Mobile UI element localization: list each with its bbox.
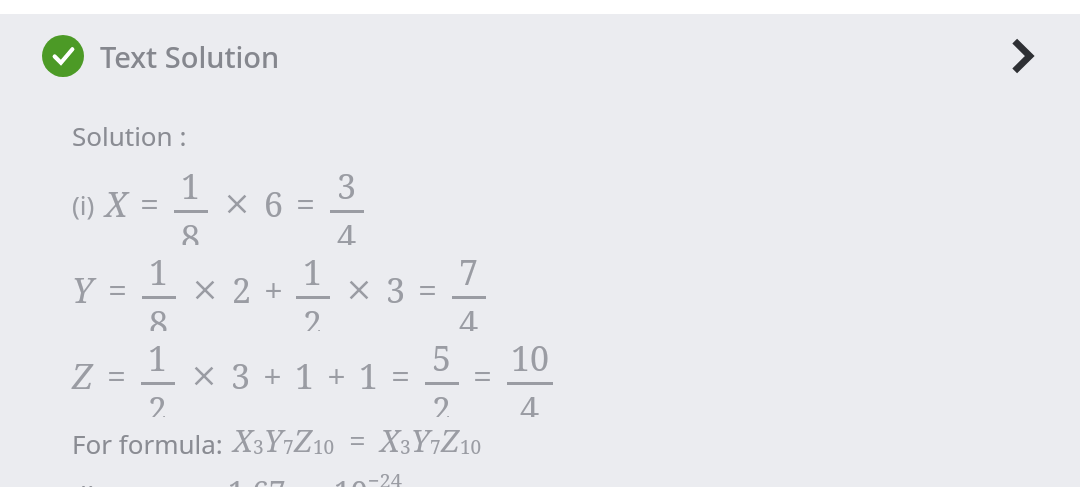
staticText: 7 — [430, 434, 441, 460]
staticText: 3 — [253, 434, 264, 460]
staticText: 3 — [337, 163, 357, 209]
staticText: 1 — [295, 353, 315, 399]
staticText: (i) — [72, 187, 95, 222]
staticText: 2 — [303, 300, 323, 331]
staticText: 10 — [511, 335, 550, 381]
staticText: 8 — [181, 214, 201, 245]
staticText: 7 — [283, 434, 294, 460]
staticText: 1 — [148, 335, 168, 381]
staticText: + — [264, 267, 284, 313]
staticText: = — [418, 267, 438, 313]
staticText: X — [105, 181, 128, 227]
staticText: 4 — [520, 386, 540, 417]
staticText: 3 — [400, 434, 411, 460]
staticText: 1 — [303, 249, 323, 295]
staticText: 5 — [432, 335, 452, 381]
staticText: Z — [441, 420, 460, 461]
staticText: 2 — [432, 386, 452, 417]
staticText: = — [473, 353, 493, 399]
staticText: 8 — [149, 300, 169, 331]
button[interactable]: Open — [1000, 34, 1044, 78]
staticText: 10 — [460, 434, 482, 460]
staticText: Text Solution — [100, 37, 280, 76]
staticText: = — [108, 267, 128, 313]
staticText: = — [140, 181, 160, 227]
staticText: 1 — [149, 249, 169, 295]
staticText: Z — [72, 353, 93, 399]
staticText: = — [391, 353, 411, 399]
staticText: 6 — [264, 181, 284, 227]
staticText: Z — [294, 420, 313, 461]
staticText: Y — [264, 420, 283, 461]
staticText: + — [263, 353, 283, 399]
staticText: Y — [72, 267, 94, 313]
staticText: 1 — [359, 353, 379, 399]
staticText: 10 — [313, 434, 335, 460]
staticText: 4 — [337, 214, 357, 245]
staticText: 3 — [231, 353, 251, 399]
staticText: 4 — [459, 300, 479, 331]
staticText: X — [380, 420, 400, 461]
staticText: X — [233, 420, 253, 461]
staticText: Y — [411, 420, 430, 461]
staticText: Solution : — [72, 118, 187, 153]
staticText: 1.67 — [228, 471, 286, 487]
staticText: + — [327, 353, 347, 399]
staticText: 7 — [459, 249, 479, 295]
staticText: 1 — [181, 163, 201, 209]
staticText: = — [296, 181, 316, 227]
staticText: 2 — [232, 267, 252, 313]
staticText: = — [107, 353, 127, 399]
staticText: −24 — [368, 467, 402, 487]
staticText: (ii) 1 amu — [72, 477, 187, 487]
staticText: 10 — [334, 471, 368, 487]
staticText: 3 — [386, 267, 406, 313]
staticText: 2 — [148, 386, 168, 417]
staticText: = — [349, 420, 366, 461]
button[interactable]: Text Solution — [0, 34, 1080, 78]
staticText: For formula: — [72, 426, 223, 461]
